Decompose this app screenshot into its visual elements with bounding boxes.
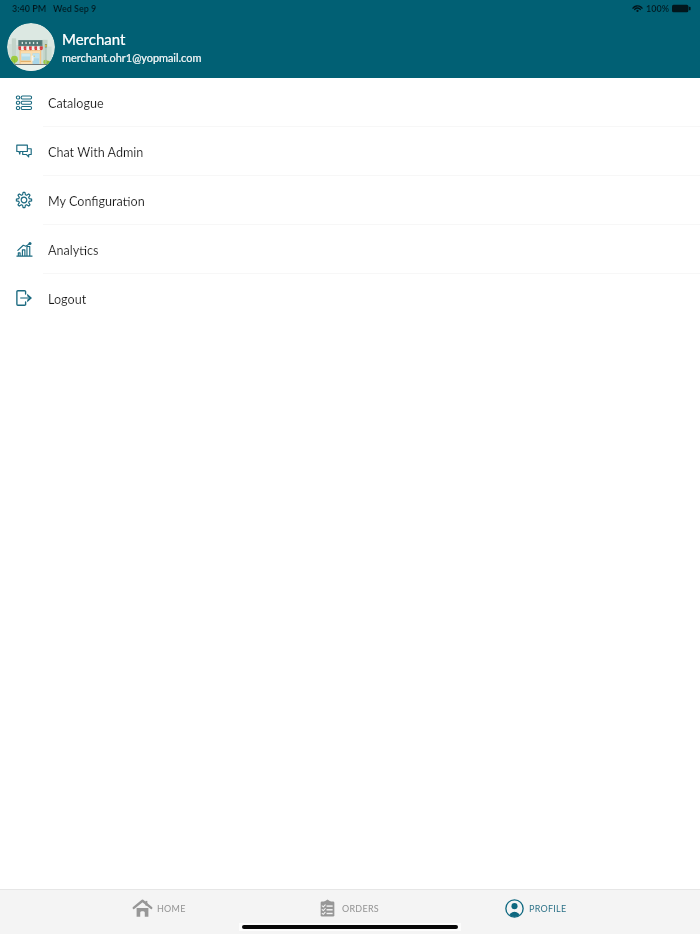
button[interactable]: My Configuration <box>0 176 700 224</box>
staticText: My Configuration <box>48 194 145 209</box>
button[interactable]: Chat With Admin <box>0 127 700 175</box>
staticText: Chat With Admin <box>48 145 144 160</box>
staticText: merchant.ohr1@yopmail.com <box>62 51 202 64</box>
button[interactable]: PROFILE <box>442 890 630 926</box>
staticText: HOME <box>157 903 186 914</box>
other: Merchant profile picture <box>7 23 55 71</box>
button[interactable]: ORDERS <box>254 890 442 926</box>
staticText: 100% <box>646 3 670 14</box>
button[interactable]: Analytics <box>0 225 700 273</box>
button[interactable]: Merchant profile picture <box>0 23 700 71</box>
staticText: Merchant <box>62 30 126 48</box>
button[interactable]: Logout <box>0 274 700 322</box>
staticText: ORDERS <box>342 903 379 914</box>
staticText: PROFILE <box>529 903 567 914</box>
staticText: 3:40 PM <box>12 3 47 14</box>
staticText: Catalogue <box>48 96 104 111</box>
staticText: Wed Sep 9 <box>53 3 97 14</box>
staticText: Logout <box>48 292 87 307</box>
button[interactable]: HOME <box>65 890 254 926</box>
button[interactable]: Catalogue <box>0 78 700 126</box>
staticText: Analytics <box>48 243 99 258</box>
